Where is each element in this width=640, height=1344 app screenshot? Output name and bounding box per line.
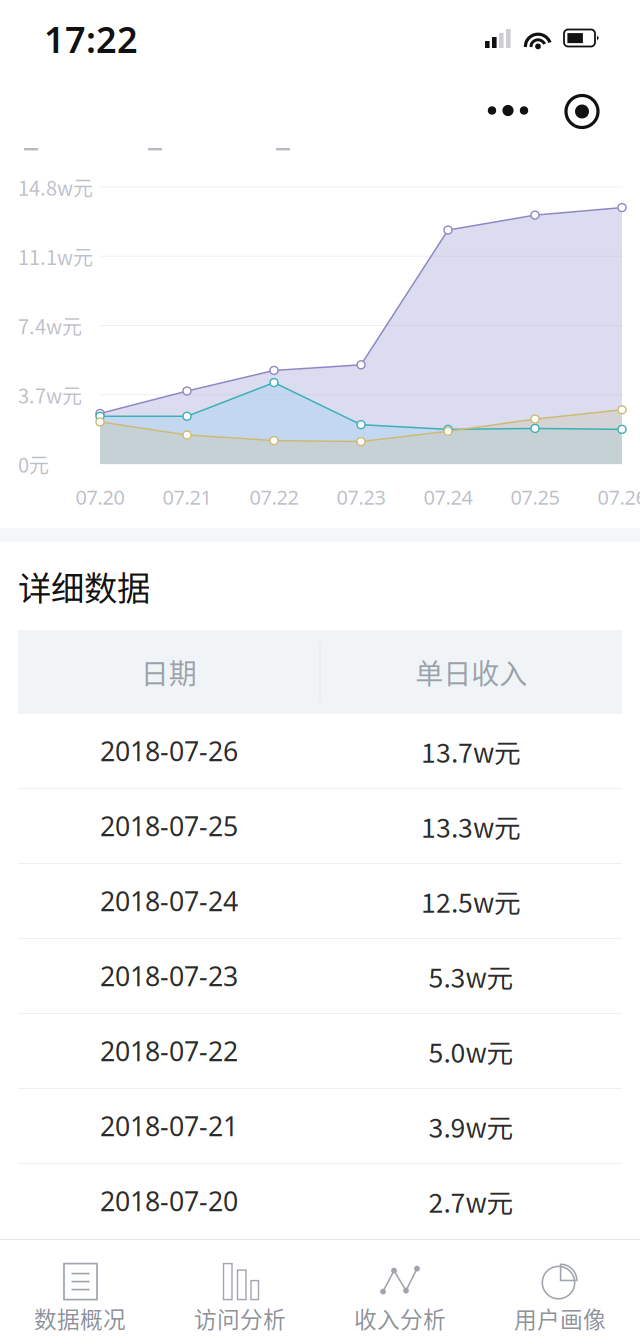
staticText: 07.22 xyxy=(249,484,298,510)
staticText: 07.23 xyxy=(336,484,385,510)
staticText: 2018-07-23 xyxy=(100,958,238,994)
staticText: 14.8w元 xyxy=(18,172,93,201)
staticText: 2018-07-22 xyxy=(100,1033,238,1069)
button[interactable]: 数据概况 xyxy=(0,1240,160,1344)
button[interactable]: 2018-07-26 xyxy=(18,714,622,788)
button[interactable]: 收入分析 xyxy=(320,1240,480,1344)
staticText: 07.25 xyxy=(510,484,559,510)
staticText: 2018-07-25 xyxy=(100,808,238,844)
staticText: 3.9w元 xyxy=(428,1107,513,1145)
staticText: 11.1w元 xyxy=(18,242,93,271)
staticText: 访问分析 xyxy=(194,1302,286,1334)
staticText: 17:22 xyxy=(44,15,138,63)
button[interactable]: 2018-07-20 xyxy=(18,1164,622,1238)
button[interactable]: Close xyxy=(550,85,614,137)
staticText: 13.3w元 xyxy=(421,807,521,845)
button[interactable]: 2018-07-22 xyxy=(18,1014,622,1088)
staticText: 2018-07-20 xyxy=(100,1183,238,1219)
button[interactable]: 用户画像 xyxy=(480,1240,640,1344)
button[interactable]: 2018-07-25 xyxy=(18,789,622,863)
staticText: 3.7w元 xyxy=(18,380,82,409)
staticText: 数据概况 xyxy=(34,1302,126,1334)
button[interactable]: 2018-07-24 xyxy=(18,864,622,938)
staticText: 5.3w元 xyxy=(428,957,513,995)
staticText: 2018-07-21 xyxy=(100,1108,238,1144)
staticText: 2018-07-24 xyxy=(100,883,238,919)
staticText: 用户画像 xyxy=(514,1302,606,1334)
staticText: 12.5w元 xyxy=(421,882,521,920)
staticText: 07.20 xyxy=(75,484,124,510)
staticText: 5.0w元 xyxy=(428,1032,513,1070)
staticText: 收入分析 xyxy=(354,1302,446,1334)
staticText: 日期 xyxy=(141,652,197,692)
staticText: 13.7w元 xyxy=(421,732,521,770)
staticText: 07.24 xyxy=(423,484,472,510)
staticText: 单日收入 xyxy=(415,652,527,692)
staticText: 详细数据 xyxy=(18,562,150,610)
staticText: 07.21 xyxy=(162,484,211,510)
button[interactable]: 访问分析 xyxy=(160,1240,320,1344)
button[interactable]: 2018-07-21 xyxy=(18,1089,622,1163)
staticText: 07.26 xyxy=(597,484,640,510)
button[interactable]: 2018-07-23 xyxy=(18,939,622,1013)
button[interactable]: More xyxy=(472,85,550,137)
staticText: 2.7w元 xyxy=(428,1182,513,1220)
staticText: 2018-07-26 xyxy=(100,733,238,769)
staticText: 7.4w元 xyxy=(18,311,82,340)
staticText: 0元 xyxy=(18,449,49,478)
